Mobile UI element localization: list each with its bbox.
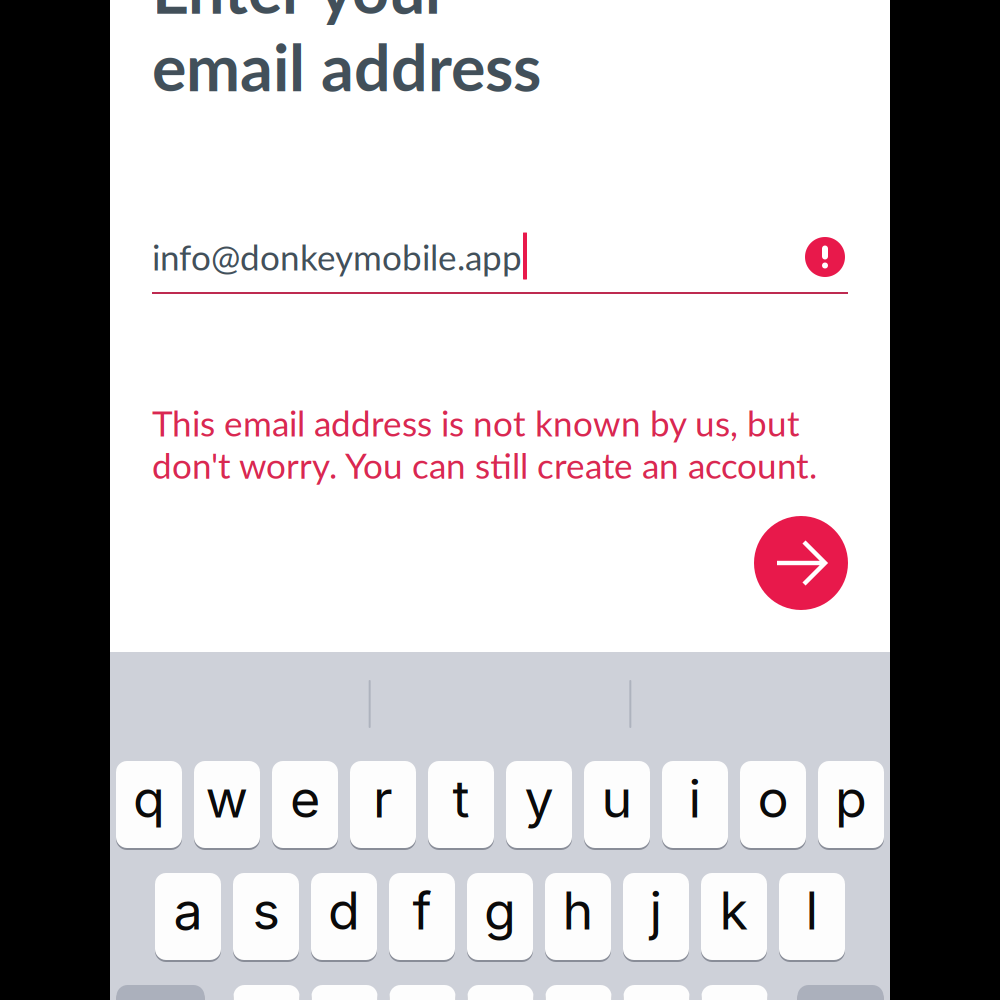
button[interactable]: Shift bbox=[116, 984, 204, 1000]
staticText: p bbox=[835, 767, 867, 830]
button[interactable]: f bbox=[389, 872, 455, 961]
button[interactable]: l bbox=[779, 872, 845, 961]
button[interactable]: g bbox=[467, 872, 533, 961]
button[interactable]: m bbox=[701, 984, 767, 1000]
staticText: q bbox=[133, 767, 165, 830]
button[interactable]: Continue bbox=[754, 516, 848, 610]
button[interactable]: k bbox=[701, 872, 767, 961]
staticText: r bbox=[373, 767, 393, 830]
staticText: w bbox=[205, 767, 248, 830]
staticText: u bbox=[601, 767, 632, 830]
staticText: t bbox=[452, 767, 469, 830]
button[interactable]: s bbox=[233, 872, 299, 961]
button[interactable]: c bbox=[389, 984, 455, 1000]
button[interactable]: q bbox=[116, 760, 182, 849]
staticText: This email address is not known by us, b… bbox=[152, 402, 817, 486]
button[interactable]: o bbox=[740, 760, 806, 849]
button[interactable]: Delete bbox=[797, 984, 883, 1000]
staticText: d bbox=[328, 879, 360, 942]
staticText: s bbox=[252, 879, 279, 942]
staticText: y bbox=[524, 767, 553, 830]
staticText: o bbox=[757, 767, 788, 830]
staticText: i bbox=[688, 767, 701, 830]
button[interactable]: a bbox=[155, 872, 221, 961]
staticText: h bbox=[562, 879, 593, 942]
staticText: info@donkeymobile.app bbox=[152, 236, 522, 278]
button[interactable]: b bbox=[545, 984, 611, 1000]
button[interactable]: n bbox=[623, 984, 689, 1000]
staticText: l bbox=[805, 879, 818, 942]
button[interactable]: z bbox=[233, 984, 299, 1000]
button[interactable]: v bbox=[467, 984, 533, 1000]
button[interactable]: t bbox=[428, 760, 494, 849]
button[interactable]: y bbox=[506, 760, 572, 849]
button[interactable]: w bbox=[194, 760, 260, 849]
button[interactable]: d bbox=[311, 872, 377, 961]
staticText: g bbox=[484, 879, 516, 942]
button[interactable]: e bbox=[272, 760, 338, 849]
staticText: Enter your email address bbox=[152, 0, 541, 105]
staticText: a bbox=[173, 879, 202, 942]
button[interactable]: j bbox=[623, 872, 689, 961]
staticText: j bbox=[649, 879, 662, 942]
button[interactable]: x bbox=[311, 984, 377, 1000]
staticText: e bbox=[290, 767, 320, 830]
button[interactable]: u bbox=[584, 760, 650, 849]
button[interactable]: info@donkeymobile.app bbox=[152, 236, 848, 278]
staticText: k bbox=[719, 879, 748, 942]
button[interactable]: i bbox=[662, 760, 728, 849]
button[interactable]: h bbox=[545, 872, 611, 961]
button[interactable]: r bbox=[350, 760, 416, 849]
staticText: f bbox=[412, 879, 431, 942]
button[interactable]: p bbox=[818, 760, 884, 849]
